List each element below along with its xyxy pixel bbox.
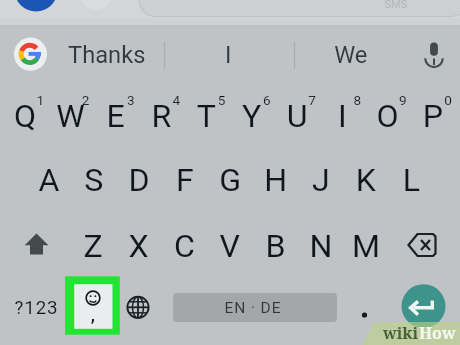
button[interactable]: [0, 0, 460, 345]
